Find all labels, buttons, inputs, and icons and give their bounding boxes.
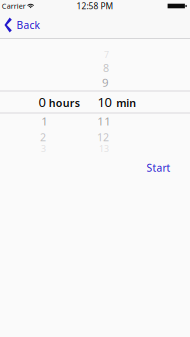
staticText: 8 — [103, 60, 109, 75]
staticText: Start — [147, 161, 171, 175]
staticText: Carrier — [2, 1, 26, 11]
staticText: 9 — [102, 74, 109, 90]
staticText: 11 — [97, 113, 111, 129]
button[interactable]: Start — [141, 156, 177, 180]
staticText: 12 — [97, 130, 109, 144]
staticText: hours — [49, 96, 80, 110]
staticText: 1 — [41, 113, 48, 129]
staticText: 13 — [99, 142, 109, 154]
staticText: 7 — [104, 49, 109, 61]
staticText: Back — [17, 18, 40, 32]
button[interactable]: Back — [0, 12, 47, 38]
staticText: 12:58 PM — [76, 0, 113, 12]
staticText: 10 — [98, 93, 112, 111]
staticText: min — [116, 96, 136, 110]
staticText: 3 — [41, 142, 46, 154]
staticText: 2 — [40, 130, 46, 144]
staticText: 0 — [38, 93, 45, 111]
